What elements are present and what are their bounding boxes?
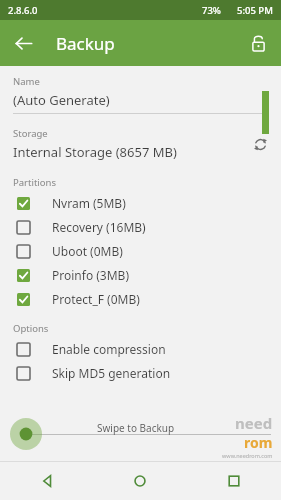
staticText: Internal Storage (8657 MB) <box>13 143 177 161</box>
button[interactable]: Recovery (16MB) <box>0 215 281 239</box>
button[interactable]: Storage <box>0 127 281 161</box>
staticText: Nvram (5MB) <box>52 195 126 211</box>
button[interactable]: Unlock <box>242 27 274 59</box>
button[interactable]: Enable compression <box>0 337 281 361</box>
button[interactable]: Swipe to Backup <box>10 418 42 450</box>
button[interactable]: Back <box>6 26 40 60</box>
button[interactable]: Protect_F (0MB) <box>0 287 281 311</box>
staticText: Proinfo (3MB) <box>52 267 130 283</box>
staticText: Uboot (0MB) <box>52 243 123 259</box>
staticText: Enable compression <box>52 341 166 357</box>
button[interactable]: Refresh storage <box>245 129 275 159</box>
staticText: Options <box>13 322 49 335</box>
button[interactable]: Uboot (0MB) <box>0 239 281 263</box>
staticText: 73% <box>202 4 221 17</box>
button[interactable]: Home <box>93 462 187 500</box>
staticText: Name <box>13 75 40 88</box>
staticText: Partitions <box>13 176 56 189</box>
button[interactable]: Skip MD5 generation <box>0 361 281 385</box>
staticText: (Auto Generate) <box>13 91 110 109</box>
button[interactable]: Proinfo (3MB) <box>0 263 281 287</box>
button[interactable]: Back <box>0 462 93 500</box>
staticText: Skip MD5 generation <box>52 365 171 381</box>
staticText: Storage <box>13 127 48 140</box>
staticText: Swipe to Backup <box>97 421 175 435</box>
staticText: www.needrom.com <box>222 452 273 459</box>
staticText: Protect_F (0MB) <box>52 291 140 307</box>
staticText: need <box>235 413 273 433</box>
staticText: 5:05 PM <box>237 4 273 17</box>
staticText: Backup <box>56 32 115 55</box>
staticText: Recovery (16MB) <box>52 219 146 235</box>
button[interactable]: Nvram (5MB) <box>0 191 281 215</box>
staticText: 2.8.6.0 <box>8 4 38 17</box>
button[interactable]: Name <box>0 75 281 114</box>
staticText: rom <box>244 433 273 452</box>
button[interactable]: Recents <box>187 462 281 500</box>
